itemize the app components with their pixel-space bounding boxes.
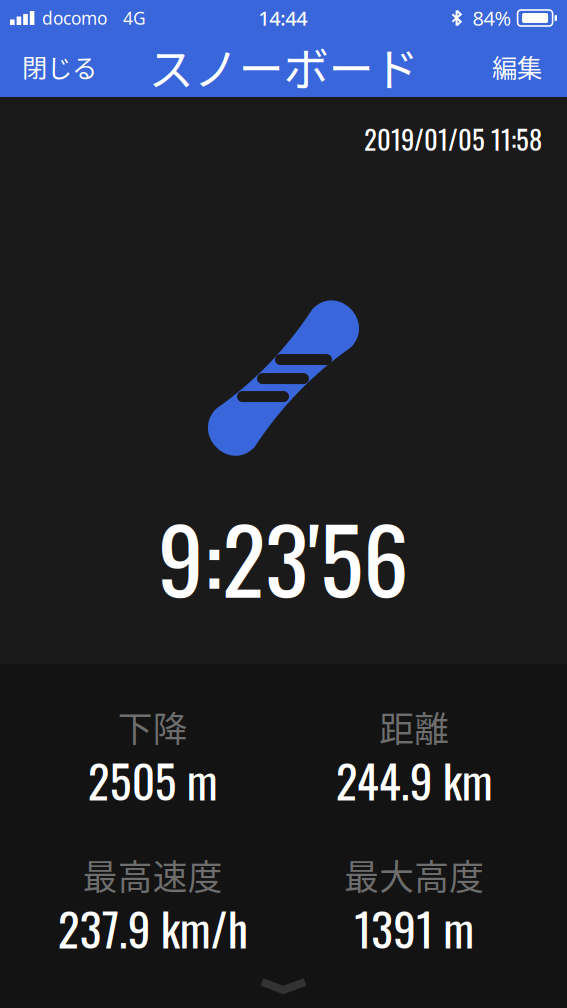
staticText: スノーボード: [148, 34, 418, 99]
staticText: 9:23'56: [158, 490, 409, 624]
staticText: 237.9 km/h: [58, 894, 248, 962]
staticText: docomo: [42, 6, 107, 29]
staticText: 14:44: [258, 5, 307, 31]
staticText: 2505 m: [88, 746, 218, 814]
staticText: 最大高度: [344, 850, 484, 900]
staticText: 閉じる: [22, 48, 97, 85]
button[interactable]: 閉じる: [0, 35, 119, 98]
staticText: 編集: [492, 48, 542, 85]
staticText: 4G: [123, 6, 146, 29]
staticText: 距離: [379, 702, 449, 752]
staticText: 下降: [118, 702, 188, 752]
button[interactable]: 編集: [467, 35, 567, 98]
staticText: 2019/01/05 11:58: [364, 119, 542, 158]
staticText: 84%: [473, 5, 512, 31]
staticText: 1391 m: [354, 894, 474, 962]
staticText: 最高速度: [83, 850, 223, 900]
staticText: 244.9 km: [336, 746, 493, 814]
